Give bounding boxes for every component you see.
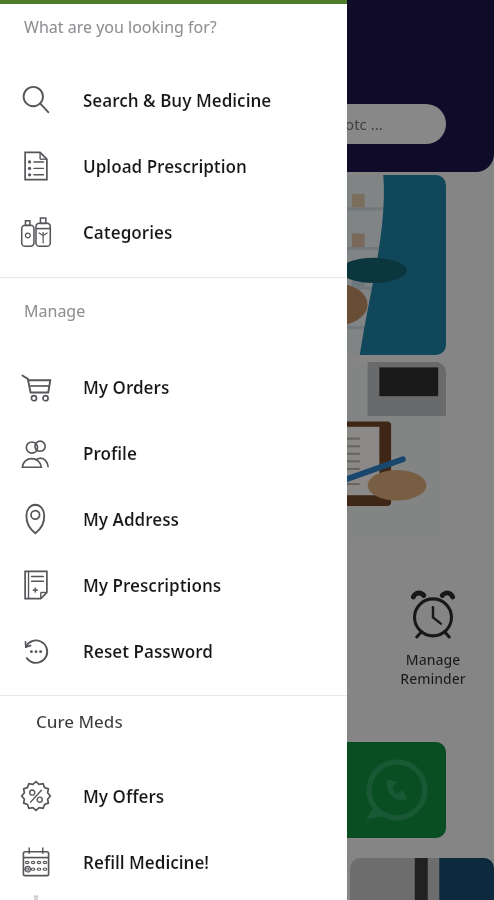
staticText: Search & Buy Medicine [83, 89, 272, 112]
staticText: My Offers [83, 785, 165, 808]
button[interactable]: pp [248, 742, 446, 838]
button[interactable]: Categories [0, 199, 347, 265]
staticText: Manage [24, 300, 86, 322]
staticText: What are you looking for? [24, 16, 217, 38]
button[interactable]: Refill Medicine! [0, 829, 347, 895]
button[interactable]: Reset Password [0, 618, 347, 684]
button[interactable]: Search & Buy Medicine [0, 67, 347, 133]
staticText: Reset Password [83, 640, 213, 663]
staticText: edicine and otc ... [260, 114, 383, 134]
staticText: Categories [83, 221, 173, 244]
staticText: Upload Prescription [83, 155, 247, 178]
staticText: My Orders [83, 376, 170, 399]
staticText: Cure Meds [36, 710, 123, 733]
button[interactable]: My Prescriptions [0, 552, 347, 618]
button[interactable]: My Address [0, 486, 347, 552]
staticText: Refill Medicine! [83, 851, 210, 874]
button[interactable]: Profile [0, 420, 347, 486]
staticText: Manage Reminder [400, 650, 466, 688]
button[interactable]: edicine and otc ... [250, 104, 446, 144]
button[interactable]: Reminders [0, 895, 347, 900]
staticText: My Address [83, 508, 179, 531]
staticText: Profile [83, 442, 137, 465]
button[interactable]: My Offers [0, 763, 347, 829]
button[interactable]: Upload Prescription [0, 133, 347, 199]
button[interactable]: My Orders [0, 354, 347, 420]
staticText: My Prescriptions [83, 574, 222, 597]
